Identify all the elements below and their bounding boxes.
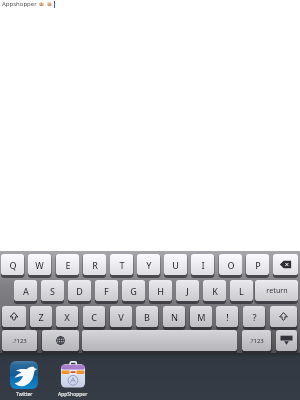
staticText: ? [252, 311, 257, 323]
button[interactable]: V [110, 306, 132, 327]
button[interactable]: B [136, 306, 158, 327]
staticText: return [266, 286, 288, 296]
staticText: P [255, 259, 261, 271]
staticText: E [65, 259, 71, 271]
button[interactable]: X [56, 306, 78, 327]
button[interactable]: ! [216, 306, 238, 327]
button[interactable]: U [164, 254, 187, 275]
button[interactable]: return [255, 280, 298, 301]
staticText: S [50, 285, 55, 297]
staticText: Q [9, 259, 17, 271]
button[interactable]: .?123 [2, 330, 37, 351]
staticText: L [239, 285, 244, 297]
button[interactable]: Hide keyboard [276, 330, 297, 351]
staticText: T [119, 259, 125, 271]
button[interactable]: Z [30, 306, 52, 327]
button[interactable]: ? [243, 306, 265, 327]
button[interactable]: O [219, 254, 242, 275]
button[interactable]: Q [1, 254, 24, 275]
button[interactable]: Space [82, 330, 237, 351]
staticText: A [23, 285, 29, 297]
staticText: Twitter [16, 391, 33, 398]
button[interactable]: L [230, 280, 253, 301]
staticText: V [118, 311, 124, 323]
staticText: M [197, 311, 206, 323]
staticText: F [104, 285, 109, 297]
button[interactable]: Next keyboard [42, 330, 79, 351]
staticText: I [201, 259, 205, 271]
staticText: Y [146, 259, 152, 271]
button[interactable]: F [95, 280, 118, 301]
button[interactable]: G [122, 280, 145, 301]
staticText: G [130, 285, 137, 297]
staticText: Z [38, 311, 44, 323]
button[interactable]: H [149, 280, 172, 301]
staticText: .?123 [12, 337, 27, 345]
button[interactable]: Y [137, 254, 160, 275]
button[interactable]: T [110, 254, 133, 275]
staticText: D [76, 285, 83, 297]
staticText: J [186, 285, 189, 297]
staticText: R [92, 259, 98, 271]
button[interactable]: Shift [270, 306, 297, 327]
staticText: ! [226, 311, 229, 323]
staticText: C [91, 311, 97, 323]
button[interactable]: N [163, 306, 185, 327]
staticText: H [157, 285, 164, 297]
staticText: AppShopper [58, 391, 88, 398]
staticText: Appshopper [2, 0, 37, 8]
button[interactable]: .?123 [242, 330, 271, 351]
button[interactable]: J [176, 280, 199, 301]
staticText: .?123 [249, 337, 264, 345]
button[interactable]: E [56, 254, 79, 275]
button[interactable]: D [68, 280, 91, 301]
staticText: O [227, 259, 235, 271]
staticText: X [64, 311, 70, 323]
button[interactable]: Shift [2, 306, 26, 327]
button[interactable]: C [83, 306, 105, 327]
button[interactable]: A [14, 280, 37, 301]
button[interactable]: I [191, 254, 214, 275]
button[interactable]: W [28, 254, 51, 275]
button[interactable]: S [41, 280, 64, 301]
button[interactable]: P [246, 254, 269, 275]
button[interactable]: K [203, 280, 226, 301]
staticText: K [212, 285, 218, 297]
button[interactable]: AppShopper [59, 361, 87, 389]
staticText: U [172, 259, 179, 271]
button[interactable]: M [190, 306, 212, 327]
button[interactable]: Twitter [10, 361, 38, 389]
button[interactable]: Backspace [273, 254, 298, 275]
staticText: N [171, 311, 178, 323]
button[interactable]: R [83, 254, 106, 275]
staticText: B [144, 311, 150, 323]
staticText: W [35, 259, 44, 271]
